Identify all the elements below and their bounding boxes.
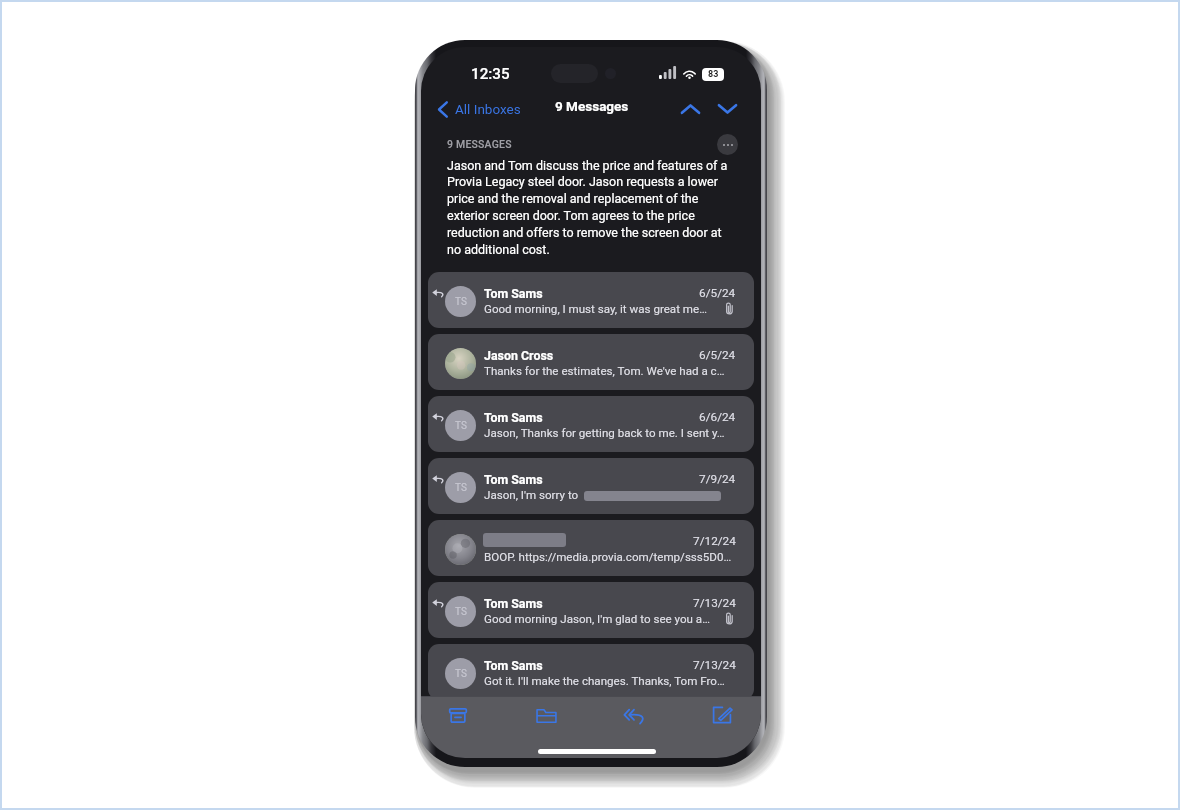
button[interactable]: Compose [700, 693, 744, 737]
staticText: All Inboxes [455, 101, 521, 117]
staticText: 6/6/24 [699, 410, 736, 424]
staticText: TS [455, 482, 467, 494]
staticText: Tom Sams [484, 658, 543, 673]
button[interactable]: Move to folder [524, 693, 568, 737]
button[interactable]: All Inboxes [438, 94, 521, 124]
staticText: Tom Sams [484, 596, 543, 611]
button[interactable]: TS [428, 272, 754, 328]
button[interactable]: TS [428, 582, 754, 638]
staticText: Jason Cross [484, 348, 554, 363]
button[interactable]: TS [428, 396, 754, 452]
staticText: 7/9/24 [699, 472, 736, 486]
button[interactable]: Next message [710, 94, 744, 124]
staticText: 12:35 [471, 65, 510, 83]
button[interactable]: Reply [612, 693, 656, 737]
button[interactable]: 7/12/24 [428, 520, 754, 576]
button[interactable]: Previous message [673, 94, 707, 124]
staticText: 9 Messages [555, 98, 629, 114]
staticText: Thanks for the estimates, Tom. We've had… [484, 364, 725, 378]
staticText: Good morning, I must say, it was great m… [484, 302, 707, 316]
staticText: Tom Sams [484, 286, 543, 301]
staticText: 7/13/24 [693, 658, 736, 672]
staticText: BOOP. https://media.provia.com/temp/sss5… [484, 550, 732, 564]
staticText: TS [455, 668, 467, 680]
staticText: 9 MESSAGES [447, 138, 512, 150]
button[interactable]: TS [428, 644, 754, 700]
staticText: 7/13/24 [693, 596, 736, 610]
staticText: 6/5/24 [699, 348, 736, 362]
button[interactable]: Jason Cross [428, 334, 754, 390]
staticText: TS [455, 296, 467, 308]
staticText: Jason, I'm sorry to [484, 488, 579, 502]
staticText: Jason and Tom discuss the price and feat… [447, 158, 736, 257]
staticText: Got it. I'll make the changes. Thanks, T… [484, 674, 725, 688]
staticText: 83 [708, 69, 719, 80]
staticText: TS [455, 606, 467, 618]
staticText: TS [455, 420, 467, 432]
staticText: 6/5/24 [699, 286, 736, 300]
staticText: Tom Sams [484, 472, 543, 487]
button[interactable]: TS [428, 458, 754, 514]
staticText: 7/12/24 [693, 534, 736, 548]
staticText: Tom Sams [484, 410, 543, 425]
button[interactable]: Archive [436, 693, 480, 737]
staticText: Good morning Jason, I'm glad to see you … [484, 612, 710, 626]
button[interactable]: More options [717, 134, 738, 155]
staticText: Jason, Thanks for getting back to me. I … [484, 426, 725, 440]
